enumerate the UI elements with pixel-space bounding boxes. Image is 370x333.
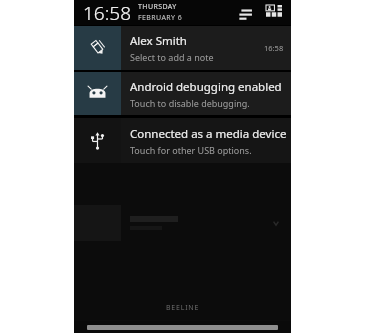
button[interactable]: Clear all notifications	[235, 2, 257, 24]
staticText: THURSDAY	[138, 2, 177, 12]
staticText: FEBRUARY 6	[138, 13, 183, 23]
staticText: Touch for other USB options.	[130, 144, 252, 156]
staticText: BEELINE	[166, 303, 200, 313]
staticText: Select to add a note	[130, 51, 214, 63]
staticText: Alex Smith	[130, 33, 187, 49]
button[interactable]: Alex Smith	[74, 26, 291, 70]
staticText: Android debugging enabled	[130, 79, 282, 95]
button[interactable]: Android debugging enabled	[74, 72, 291, 115]
staticText: Touch to disable debugging.	[130, 97, 250, 109]
staticText: Connected as a media device	[130, 126, 287, 142]
staticText: 16:58	[264, 43, 284, 53]
button[interactable]: Quick settings	[263, 2, 285, 24]
staticText: 16:58	[83, 0, 132, 25]
button[interactable]: Connected as a media device	[74, 118, 291, 163]
